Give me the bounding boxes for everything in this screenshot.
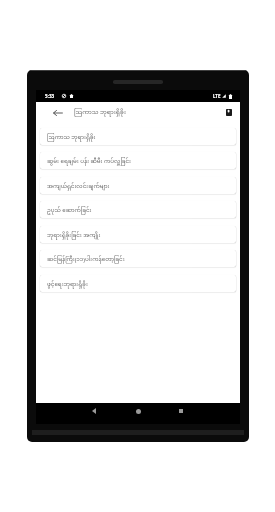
staticText: ဘုရားရှိခိုးခြင်း အကျိုး (47, 232, 101, 240)
button[interactable]: အကျယ်ရှင်းလင်းချက်များ (40, 177, 236, 194)
button[interactable]: ဆွမ်း ရေချမ်း ပန်း ဆီမီး ကပ်လှူခြင်း (40, 152, 236, 169)
staticText: ဖွင့်ရေးဘုရားရှိခိုး (47, 281, 88, 289)
button[interactable]: ဩကာသ ဘုရားရှိခိုး (40, 128, 236, 145)
staticText: 5:33 (45, 93, 55, 99)
staticText: ဩကာသ ဘုရားရှိခိုး (74, 109, 126, 117)
staticText: ဩကာသ ဘုရားရှိခိုး (47, 134, 96, 142)
button[interactable]: Home (130, 403, 146, 419)
button[interactable]: Back (86, 403, 102, 419)
staticText: ဆွမ်း ရေချမ်း ပန်း ဆီမီး ကပ်လှူခြင်း (47, 158, 132, 166)
staticText: ဥပုသ် ဆောက်ခြင်း (47, 207, 92, 215)
button[interactable]: ဘုရားရှိခိုးခြင်း အကျိုး (40, 226, 236, 243)
staticText: ဆင်မြန်ကြီး(၁၁)ပါးကန်တော့ခြင်း (47, 256, 125, 264)
button[interactable]: ဖွင့်ရေးဘုရားရှိခိုး (40, 275, 236, 292)
staticText: LTE (213, 93, 221, 99)
button[interactable]: ဆင်မြန်ကြီး(၁၁)ပါးကန်တော့ခြင်း (40, 250, 236, 267)
staticText: အကျယ်ရှင်းလင်းချက်များ (47, 183, 110, 191)
button[interactable]: Open book (219, 102, 238, 123)
button[interactable]: Recent apps (173, 403, 189, 419)
button[interactable]: ဥပုသ် ဆောက်ခြင်း (40, 201, 236, 218)
button[interactable]: Navigate up (48, 102, 67, 123)
